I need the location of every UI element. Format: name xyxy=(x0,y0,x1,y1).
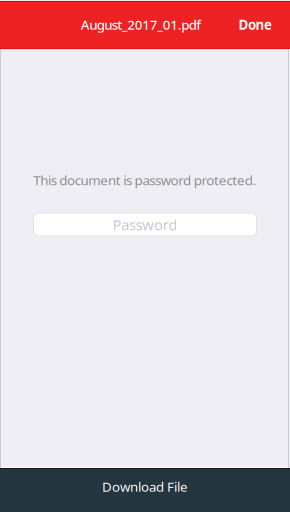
staticText: Done xyxy=(238,16,272,33)
staticText: Download File xyxy=(102,478,188,495)
button[interactable]: Password xyxy=(33,213,256,236)
staticText: This document is password protected. xyxy=(33,171,257,189)
staticText: August_2017_01.pdf xyxy=(81,16,201,33)
button[interactable]: Download File xyxy=(0,468,290,512)
staticText: Password xyxy=(112,215,177,234)
button[interactable]: Done xyxy=(222,4,290,45)
